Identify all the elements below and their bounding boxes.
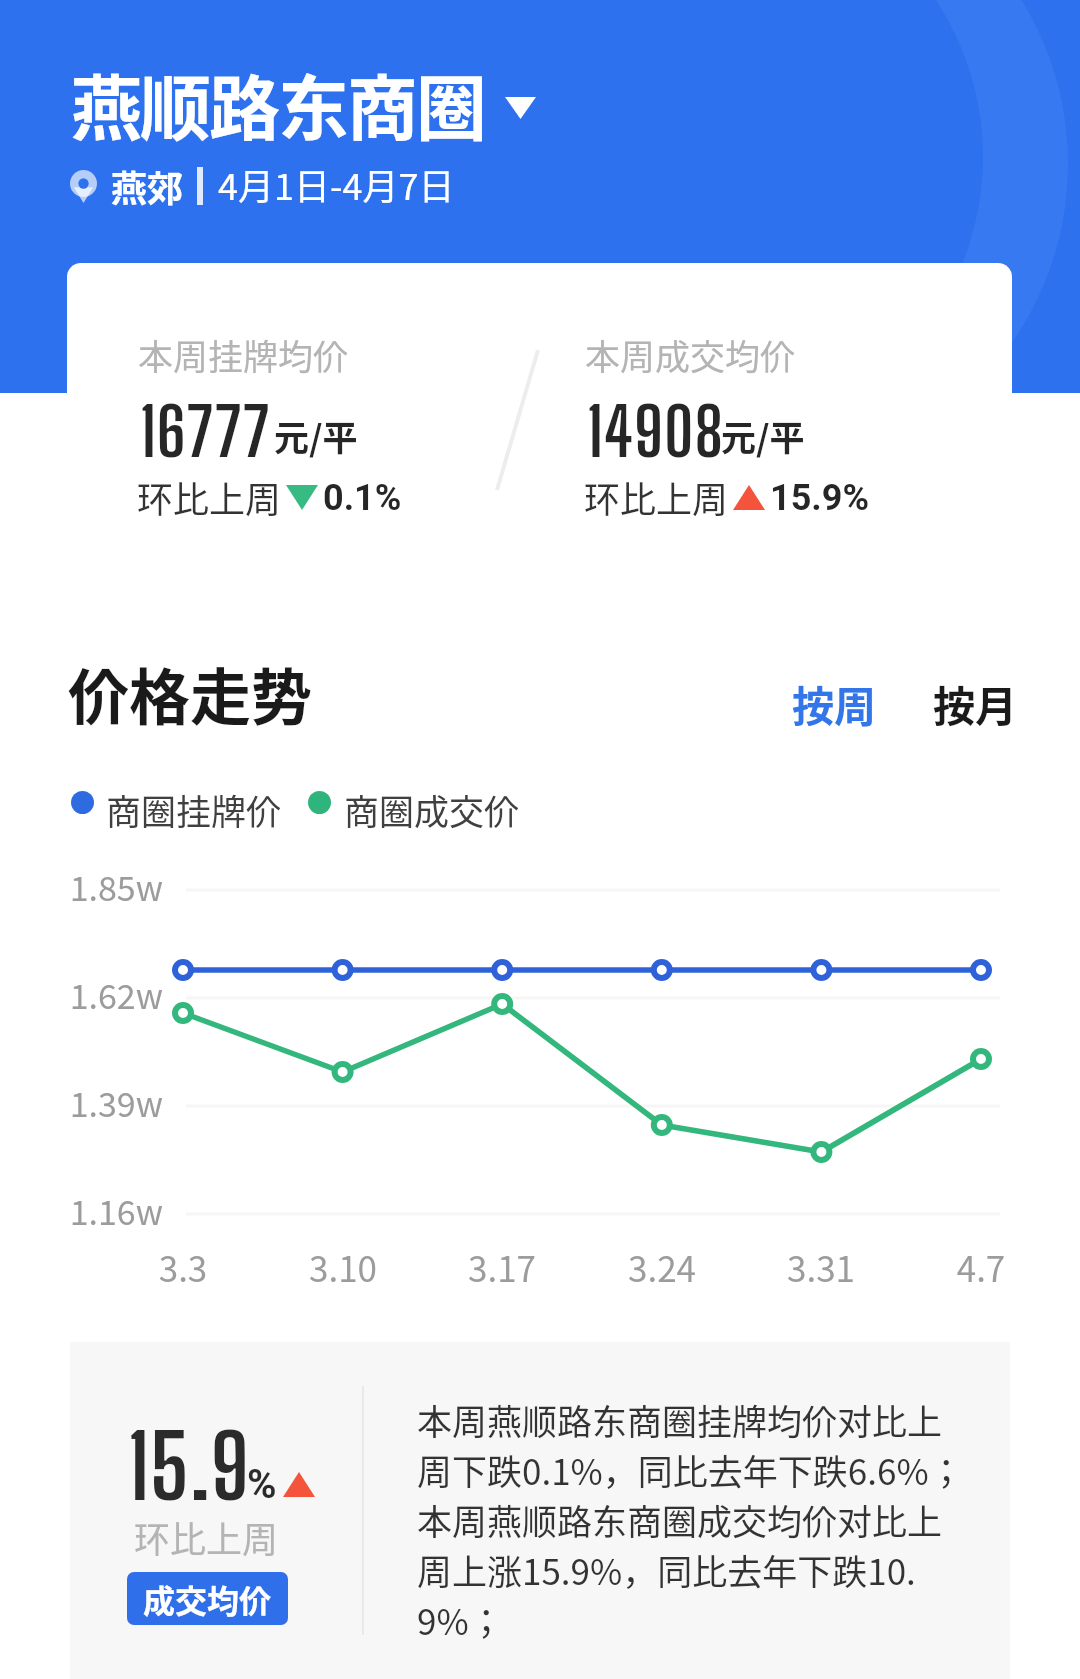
other: Location [70,170,97,203]
staticText: 本周成交均价 [585,329,796,380]
staticText: 16777 [140,392,271,471]
staticText: 15.9% [770,477,870,519]
staticText: 环比上周 [137,471,282,523]
staticText: 4.7 [901,1241,1061,1292]
staticText: 1.62w [0,970,163,1019]
staticText: 1.85w [0,862,163,911]
staticText: 3.10 [263,1241,423,1292]
staticText: 15.9 [128,1414,251,1518]
button[interactable]: 燕顺路东商圈 [71,52,536,155]
staticText: 燕顺路东商圈 [71,52,486,155]
staticText: 4月1日-4月7日 [218,158,455,210]
staticText: 3.3 [103,1241,263,1292]
staticText: 元/平 [721,410,805,461]
staticText: 本周燕顺路东商圈挂牌均价对比上 周下跌0.1%，同比去年下跌6.6%； 本周燕顺… [417,1394,964,1645]
staticText: 1.16w [0,1186,163,1235]
staticText: 3.17 [422,1241,582,1292]
staticText: 商圈成交价 [344,784,520,835]
staticText: % [247,1461,277,1508]
staticText: 环比上周 [584,471,729,523]
staticText: 3.31 [741,1241,901,1292]
staticText: 燕郊 [111,160,184,212]
staticText: 1.39w [0,1078,163,1127]
staticText: 3.24 [582,1241,742,1292]
staticText: 14908 [587,392,725,471]
button[interactable]: 价格走势 [68,649,313,737]
button[interactable]: 按周 [778,663,891,744]
staticText: 0.1% [323,477,402,519]
staticText: 环比上周 [134,1511,279,1563]
staticText: 按周 [792,673,877,734]
staticText: 本周挂牌均价 [138,329,349,380]
button[interactable]: 成交均价 [127,1572,288,1625]
staticText: 商圈挂牌价 [106,784,282,835]
staticText: 按月 [933,673,1018,734]
staticText: 元/平 [274,410,358,461]
staticText: 成交均价 [143,1576,272,1622]
button[interactable]: 按月 [919,663,1032,744]
